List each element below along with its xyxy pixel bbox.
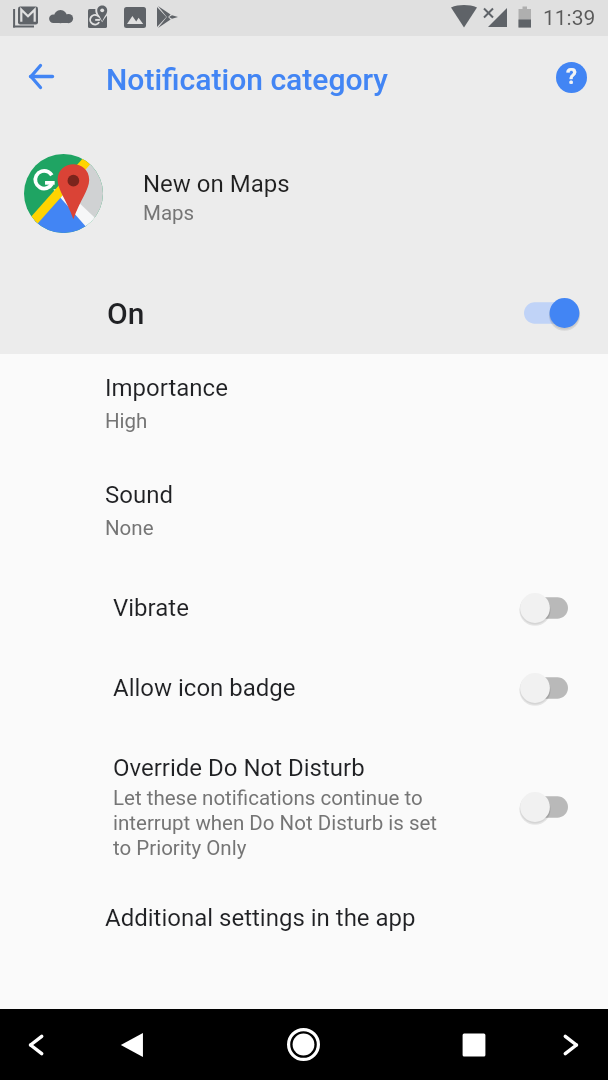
button[interactable]: Recents <box>442 1009 506 1080</box>
staticText: Sound <box>105 481 173 509</box>
staticText: On <box>107 296 145 331</box>
button[interactable]: Additional settings in the app <box>0 880 608 956</box>
button[interactable]: Home <box>271 1009 335 1080</box>
staticText: ? <box>566 64 577 90</box>
staticText: Vibrate <box>113 594 189 622</box>
button[interactable]: Sound None <box>0 469 608 549</box>
button[interactable]: Previous <box>4 1009 68 1080</box>
button[interactable]: Override Do Not Disturb <box>0 742 608 872</box>
button[interactable]: Importance High <box>0 362 608 442</box>
staticText: New on Maps <box>143 170 290 198</box>
button[interactable]: Back <box>17 52 65 100</box>
staticText: Maps <box>143 201 195 225</box>
staticText: High <box>105 409 148 433</box>
staticText: 11:39 <box>543 6 596 31</box>
button[interactable]: Back <box>100 1009 164 1080</box>
staticText: Additional settings in the app <box>105 904 416 932</box>
staticText: Importance <box>105 374 228 402</box>
staticText: Let these notifications continue to inte… <box>113 786 438 860</box>
staticText: Override Do Not Disturb <box>113 754 365 782</box>
button[interactable]: On <box>0 274 608 352</box>
staticText: None <box>105 516 154 540</box>
button[interactable]: Vibrate <box>0 570 608 646</box>
staticText: Allow icon badge <box>113 674 296 702</box>
staticText: Notification category <box>106 62 388 97</box>
button[interactable]: Allow icon badge <box>0 650 608 726</box>
button[interactable]: Next <box>539 1009 603 1080</box>
button[interactable]: Help <box>548 54 594 100</box>
